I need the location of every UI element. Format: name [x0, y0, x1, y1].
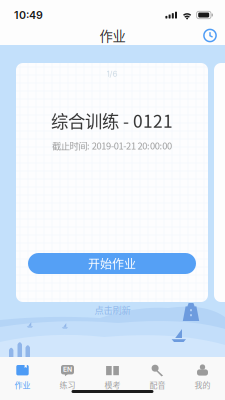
- staticText: 综合训练 - 0121: [51, 108, 173, 133]
- staticText: 作业: [99, 26, 125, 45]
- button[interactable]: 模考: [90, 357, 135, 400]
- button[interactable]: 我的: [180, 357, 225, 400]
- staticText: 开始作业: [88, 255, 136, 272]
- staticText: EN: [63, 365, 72, 373]
- button[interactable]: 作业: [0, 357, 45, 400]
- button[interactable]: History: [197, 25, 223, 46]
- staticText: 1/6: [106, 69, 117, 79]
- staticText: 10:49: [14, 8, 43, 21]
- button[interactable]: 开始作业: [28, 253, 196, 274]
- staticText: 点击刷新: [94, 303, 130, 316]
- staticText: 模考: [104, 379, 120, 391]
- button[interactable]: EN: [45, 357, 90, 400]
- button[interactable]: 配音: [135, 357, 180, 400]
- staticText: 我的: [194, 379, 210, 391]
- staticText: 练习: [59, 379, 75, 391]
- staticText: 作业: [14, 379, 30, 391]
- staticText: 截止时间: 2019-01-21 20:00:00: [52, 139, 172, 152]
- staticText: 配音: [149, 379, 165, 391]
